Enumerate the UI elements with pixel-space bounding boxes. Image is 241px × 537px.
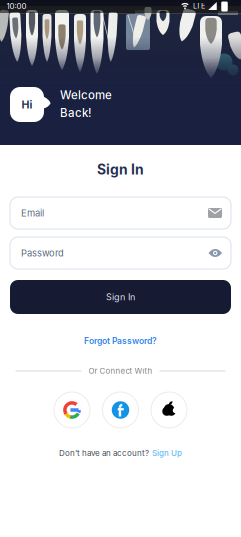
staticText: Sign In [106, 291, 135, 302]
staticText: Welcome [60, 88, 112, 102]
staticText: Email [21, 207, 44, 219]
button[interactable]: Password [10, 237, 231, 269]
button[interactable]: Sign in with Facebook [102, 392, 138, 428]
staticText: Sign Up [152, 448, 182, 458]
button[interactable]: Email [10, 197, 231, 229]
button[interactable]: Sign In [10, 280, 231, 314]
staticText: Password [21, 247, 64, 259]
staticText: Sign In [97, 161, 144, 178]
button[interactable]: Sign in with Apple [151, 392, 187, 428]
staticText: Hi [21, 98, 32, 111]
staticText: Don't have an account? [59, 448, 149, 458]
button[interactable]: Sign in with Google [54, 392, 90, 428]
staticText: 10:00 [6, 1, 26, 11]
staticText: Back! [60, 106, 91, 120]
staticText: LTE [193, 2, 205, 10]
button[interactable]: Forgot Password? [84, 336, 157, 346]
button[interactable]: Sign Up [152, 448, 182, 458]
staticText: Or Connect With [88, 366, 152, 376]
staticText: Forgot Password? [84, 336, 157, 346]
